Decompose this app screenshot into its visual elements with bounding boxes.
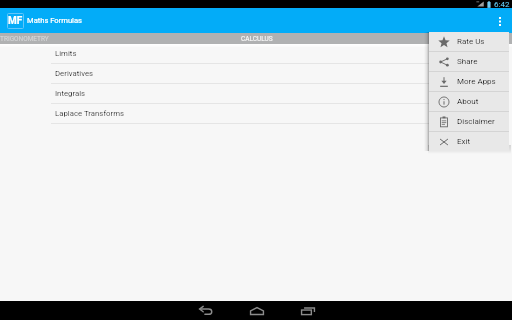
button[interactable]: Integrals [0, 84, 512, 104]
staticText: More Apps [457, 77, 496, 86]
staticText: TRIGONOMETRY [0, 35, 49, 43]
staticText: 6:42 [494, 0, 510, 8]
button[interactable]: Rate Us [429, 32, 509, 51]
staticText: Exit [457, 137, 471, 146]
button[interactable]: More Apps [429, 72, 509, 91]
button[interactable]: Laplace Transforms [0, 104, 512, 124]
staticText: Limits [55, 49, 77, 58]
staticText: Derivatives [55, 69, 94, 78]
button[interactable]: Share [429, 52, 509, 71]
staticText: MF [8, 15, 23, 27]
staticText: Rate Us [457, 37, 485, 46]
button[interactable]: CALCULUS [222, 33, 292, 44]
staticText: Laplace Transforms [55, 109, 125, 118]
button[interactable]: Exit [429, 132, 509, 151]
staticText: Disclaimer [457, 117, 495, 126]
staticText: CALCULUS [241, 35, 273, 43]
button[interactable]: Recents [282, 301, 333, 320]
button[interactable]: Home [231, 301, 282, 320]
button[interactable]: Disclaimer [429, 112, 509, 131]
button[interactable]: More options [488, 8, 512, 33]
staticText: Maths Formulas [27, 16, 82, 25]
staticText: Share [457, 57, 478, 66]
button[interactable]: About [429, 92, 509, 111]
staticText: About [457, 97, 479, 106]
staticText: Integrals [55, 89, 86, 98]
button[interactable]: Limits [0, 44, 512, 64]
button[interactable]: Back [180, 301, 231, 320]
button[interactable]: TRIGONOMETRY [0, 33, 52, 44]
button[interactable]: Derivatives [0, 64, 512, 84]
